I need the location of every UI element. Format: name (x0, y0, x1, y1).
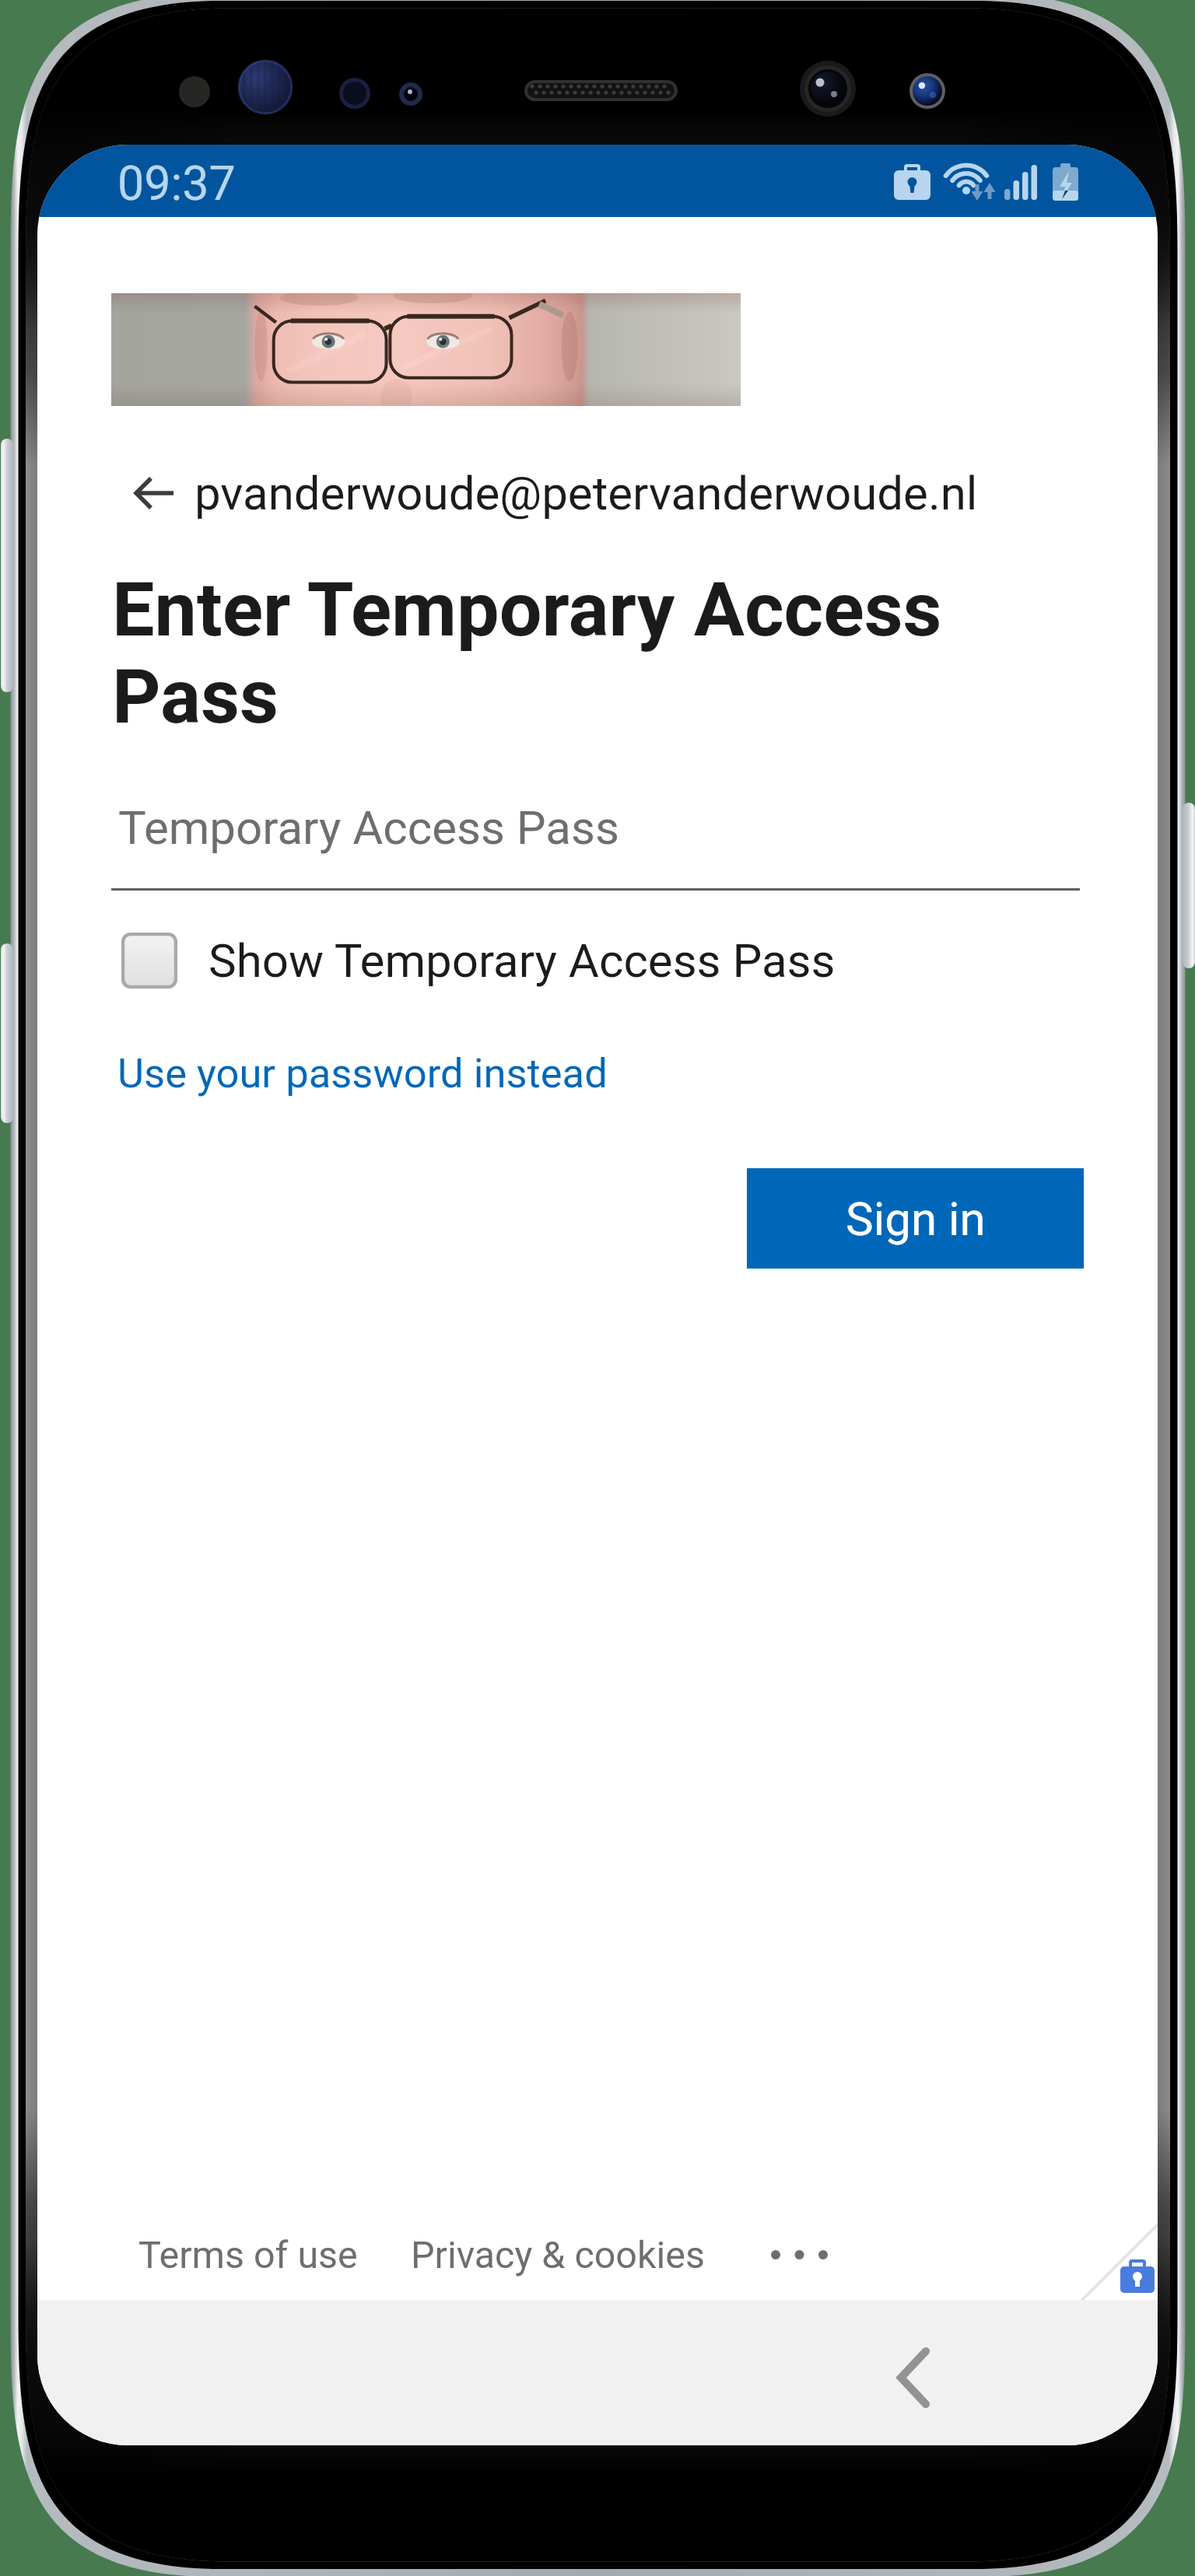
staticText: Privacy & cookies (411, 2233, 705, 2277)
button[interactable]: Show Temporary Access Pass (111, 919, 967, 1002)
staticText: 09:37 (117, 156, 236, 211)
button[interactable]: Terms of use (138, 2233, 358, 2277)
button[interactable]: Use your password instead (111, 1036, 656, 1111)
button[interactable]: Privacy & cookies (411, 2233, 705, 2277)
staticText: Sign in (846, 1192, 986, 1246)
button[interactable]: Back (868, 2331, 962, 2424)
button[interactable]: More options (771, 2231, 844, 2278)
button[interactable]: pvanderwoude@petervanderwoude.nl (194, 450, 978, 537)
staticText: Terms of use (138, 2233, 358, 2277)
staticText: pvanderwoude@petervanderwoude.nl (194, 466, 978, 520)
button[interactable]: Back (115, 450, 194, 537)
staticText: Show Temporary Access Pass (209, 933, 836, 988)
staticText: Enter Temporary Access Pass (112, 565, 1015, 740)
button[interactable]: Sign in (747, 1168, 1084, 1269)
staticText: Use your password instead (117, 1049, 608, 1097)
staticText: Temporary Access Pass (118, 800, 619, 855)
